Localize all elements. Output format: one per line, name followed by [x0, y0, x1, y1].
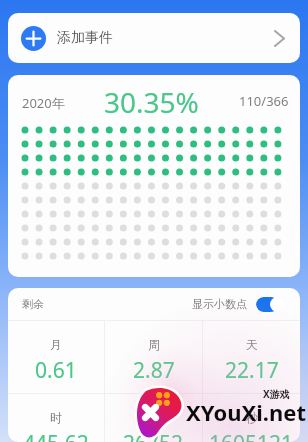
staticText: 2020年: [22, 94, 65, 112]
staticText: 显示小数点: [192, 297, 247, 311]
staticText: 添加事件: [57, 29, 113, 47]
staticText: 分: [148, 410, 160, 425]
staticText: 月: [50, 337, 62, 352]
button[interactable]: 周: [105, 321, 202, 393]
staticText: 时: [50, 410, 62, 425]
staticText: 26752: [123, 429, 184, 442]
staticText: X游戏: [263, 387, 290, 401]
staticText: 2.87: [133, 356, 175, 385]
staticText: 445.62: [23, 429, 89, 442]
button[interactable]: 添加事件: [8, 13, 300, 63]
staticText: 0.61: [35, 356, 77, 385]
staticText: 1605121: [209, 429, 294, 442]
staticText: 周: [148, 337, 160, 352]
staticText: 剩余: [22, 297, 44, 311]
button[interactable]: 天: [203, 321, 300, 393]
button[interactable]: 分: [105, 394, 202, 442]
staticText: 30.35%: [104, 83, 199, 121]
staticText: XYouXi.net: [186, 397, 306, 427]
button[interactable]: 秒: [203, 394, 300, 442]
staticText: 110/366: [239, 92, 289, 110]
button[interactable]: 月: [8, 321, 104, 393]
button[interactable]: 显示小数点: [256, 297, 285, 312]
staticText: 22.17: [225, 356, 279, 385]
staticText: 秒: [246, 410, 258, 425]
staticText: 天: [246, 337, 258, 352]
button[interactable]: 时: [8, 394, 104, 442]
